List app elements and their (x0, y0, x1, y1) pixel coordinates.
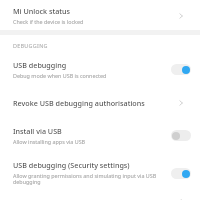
staticText: Allow installing apps via USB (13, 138, 86, 145)
staticText: Install via USB (13, 126, 62, 136)
staticText: Debug mode when USB is connected (13, 72, 107, 79)
button[interactable]: Toggle off (171, 130, 191, 141)
staticText: USB debugging (Security settings) (13, 160, 130, 170)
staticText: Check if the device is locked (13, 18, 84, 25)
staticText: Allow granting permissions and simulatin… (13, 172, 164, 186)
button[interactable]: USB debugging (0, 58, 200, 81)
button[interactable]: Revoke USB debugging authorisations (0, 93, 200, 113)
staticText: Mi Unlock status (13, 6, 71, 16)
button[interactable]: Toggle on (171, 168, 191, 179)
button[interactable]: Open Mi Unlock status (173, 8, 189, 24)
button[interactable]: Install via USB (0, 124, 200, 147)
button[interactable]: Toggle on (171, 64, 191, 75)
staticText: Revoke USB debugging authorisations (13, 98, 145, 108)
button[interactable]: Revoke USB debugging authorisations (173, 95, 189, 111)
button[interactable]: USB debugging (Security settings) (0, 158, 200, 188)
staticText: USB debugging (13, 60, 67, 70)
button[interactable]: Mi Unlock status (0, 3, 200, 30)
staticText: DEBUGGING (13, 42, 48, 49)
